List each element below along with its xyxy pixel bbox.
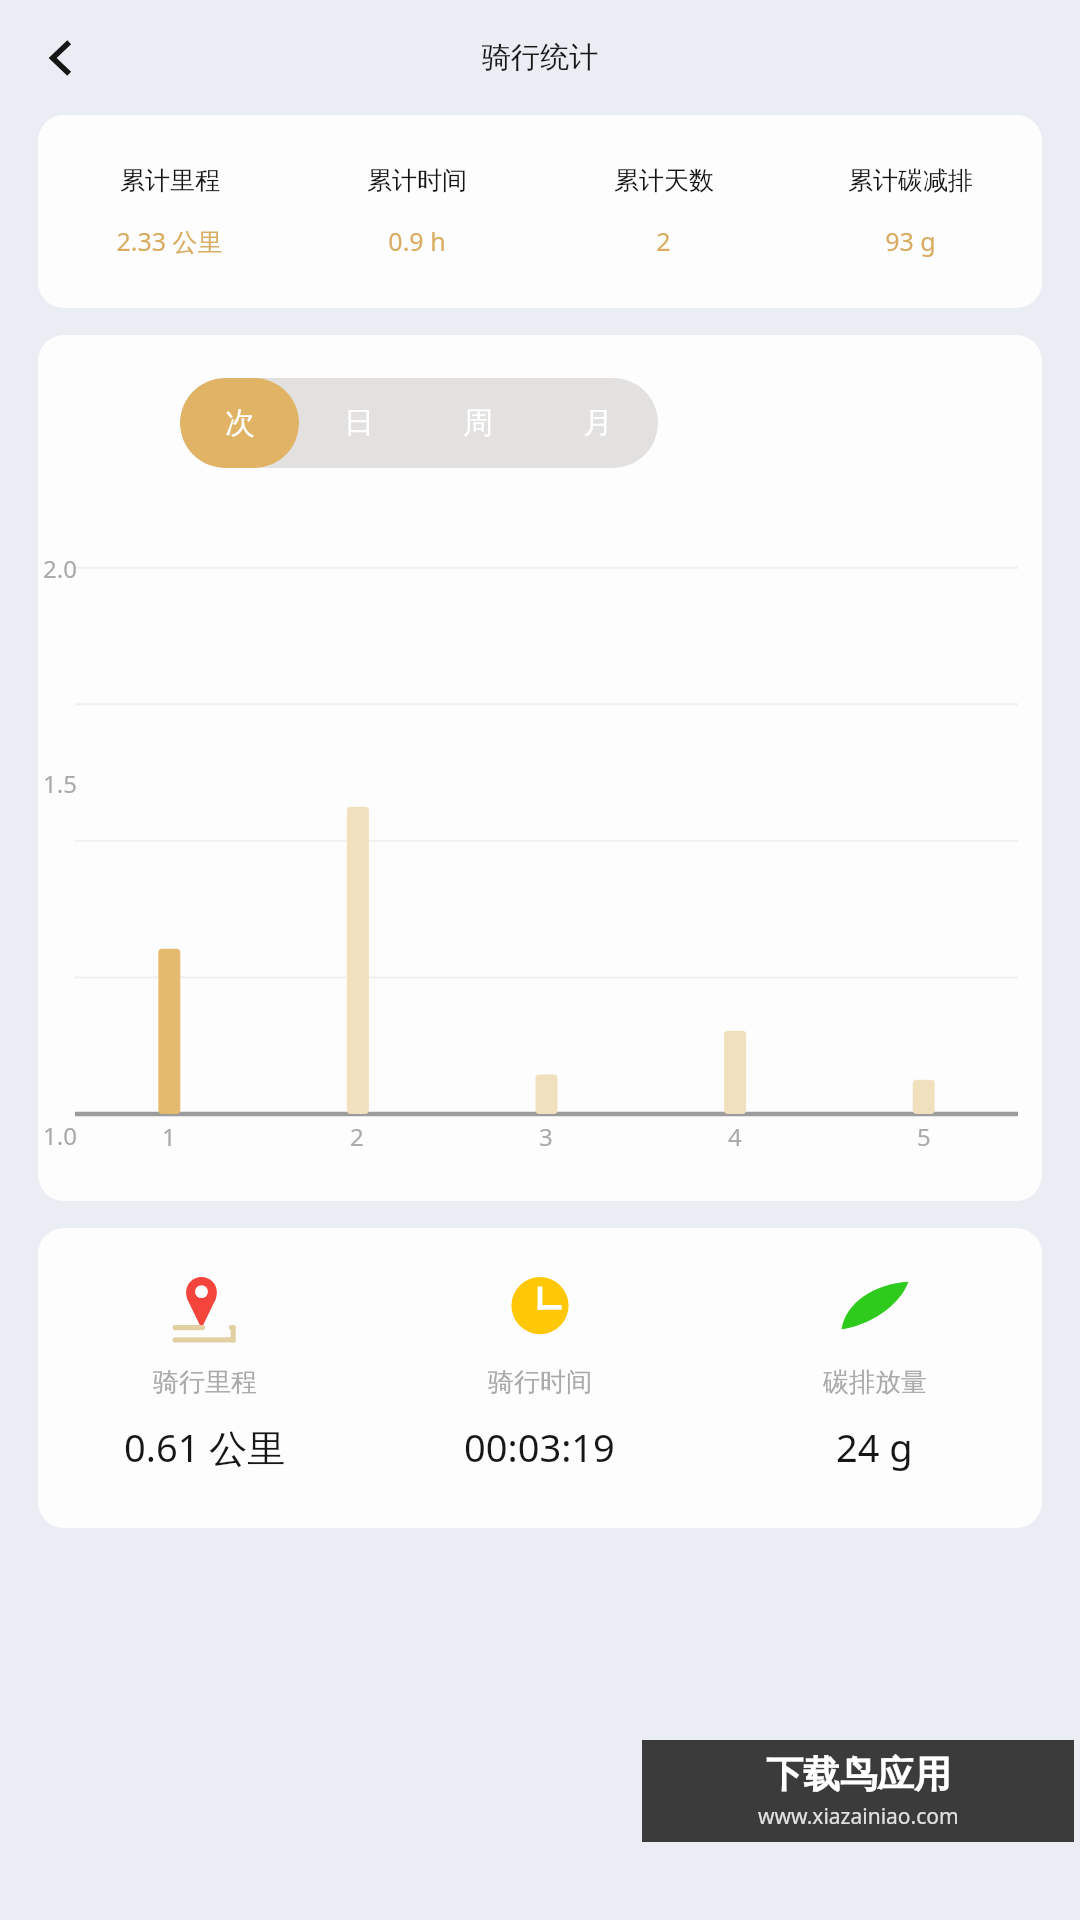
staticText: 3: [539, 1120, 553, 1151]
staticText: www.xiazainiao.com: [758, 1802, 959, 1831]
staticText: 4: [728, 1120, 742, 1151]
button[interactable]: 次: [180, 378, 299, 468]
button[interactable]: Back: [30, 26, 94, 90]
staticText: 24 g: [836, 1421, 913, 1473]
staticText: 0.9 h: [388, 224, 446, 258]
staticText: 93 g: [885, 224, 936, 258]
staticText: 5: [917, 1120, 931, 1151]
staticText: 1.5: [43, 767, 77, 800]
button[interactable]: 日: [299, 378, 418, 468]
staticText: 2: [350, 1120, 364, 1151]
button[interactable]: 月: [538, 378, 658, 468]
staticText: 0.61 公里: [124, 1421, 286, 1473]
staticText: 周: [463, 404, 493, 442]
staticText: 骑行统计: [482, 39, 598, 76]
staticText: 1.0: [43, 1119, 77, 1151]
staticText: 1: [162, 1120, 176, 1151]
staticText: 累计碳减排: [848, 165, 973, 196]
button[interactable]: 碳排放量: [707, 1266, 1042, 1473]
staticText: 碳排放量: [823, 1366, 927, 1399]
staticText: 月: [583, 404, 613, 442]
staticText: 累计里程: [120, 165, 220, 196]
staticText: 累计天数: [614, 165, 714, 196]
button[interactable]: 周: [418, 378, 538, 468]
button[interactable]: 骑行时间: [372, 1266, 707, 1473]
button[interactable]: 累计里程: [38, 115, 1042, 308]
staticText: 00:03:19: [464, 1421, 615, 1473]
staticText: 2.33 公里: [116, 224, 223, 258]
staticText: 骑行时间: [488, 1366, 592, 1399]
staticText: 2: [656, 224, 671, 258]
staticText: 次: [225, 404, 255, 442]
button[interactable]: 骑行里程: [38, 1266, 372, 1473]
staticText: 下载鸟应用: [766, 1751, 951, 1798]
staticText: 日: [344, 404, 374, 442]
staticText: 累计时间: [367, 165, 467, 196]
staticText: 骑行里程: [153, 1366, 257, 1399]
staticText: 2.0: [43, 552, 77, 585]
